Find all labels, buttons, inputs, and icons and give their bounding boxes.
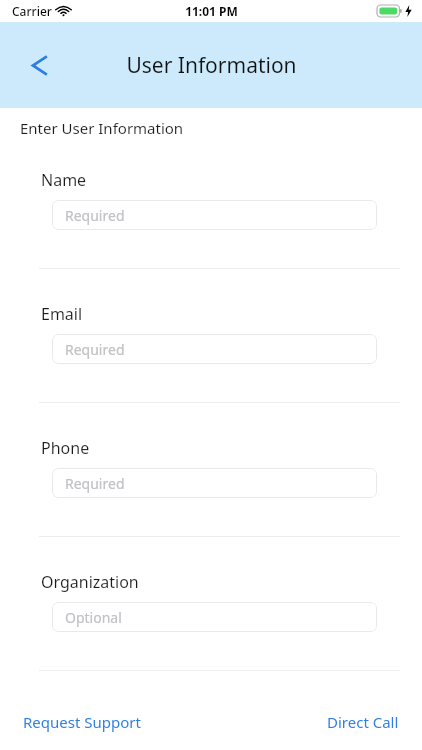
- staticText: Organization: [41, 571, 139, 593]
- staticText: 11:01 PM: [185, 3, 238, 19]
- staticText: Direct Call: [327, 712, 399, 732]
- staticText: Name: [41, 169, 87, 191]
- staticText: Required: [65, 474, 125, 493]
- staticText: Request Support: [23, 712, 141, 732]
- staticText: Required: [65, 340, 125, 359]
- button[interactable]: Required: [52, 200, 377, 230]
- staticText: Carrier: [12, 3, 52, 19]
- button[interactable]: Optional: [52, 602, 377, 632]
- button[interactable]: Direct Call: [325, 708, 401, 736]
- button[interactable]: Back: [18, 44, 60, 86]
- staticText: User Information: [126, 51, 297, 80]
- button[interactable]: Required: [52, 334, 377, 364]
- button[interactable]: Required: [52, 468, 377, 498]
- staticText: Required: [65, 206, 125, 225]
- staticText: Email: [41, 303, 83, 325]
- staticText: Enter User Information: [20, 118, 184, 138]
- staticText: Optional: [65, 608, 122, 627]
- staticText: Phone: [41, 437, 90, 459]
- button[interactable]: Request Support: [21, 708, 143, 736]
